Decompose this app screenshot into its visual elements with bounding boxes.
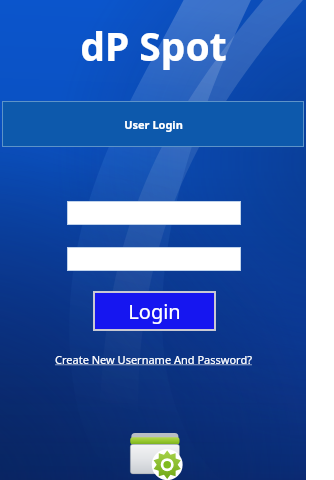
button[interactable]: Username (67, 201, 241, 225)
staticText: Login (128, 298, 181, 325)
staticText: User Login (124, 117, 183, 132)
button[interactable]: User Login (2, 101, 304, 147)
button[interactable]: Login (93, 291, 216, 331)
button[interactable]: Create New Username And Password? (28, 349, 278, 369)
staticText: Create New Username And Password? (55, 352, 252, 367)
staticText: dP Spot (80, 19, 227, 72)
button[interactable]: Settings folder (128, 429, 184, 480)
button[interactable]: Password (67, 247, 241, 271)
